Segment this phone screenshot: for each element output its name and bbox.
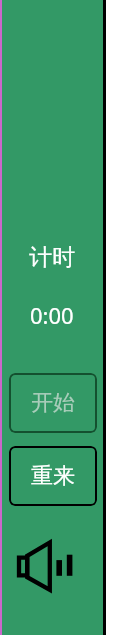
button[interactable]: 开始 [9, 373, 97, 433]
staticText: 计时 [29, 243, 75, 272]
button[interactable]: Volume [14, 536, 76, 596]
staticText: 开始 [31, 389, 75, 417]
staticText: 0:00 [30, 300, 74, 330]
button[interactable]: 重来 [9, 446, 97, 506]
staticText: 重来 [31, 462, 75, 490]
